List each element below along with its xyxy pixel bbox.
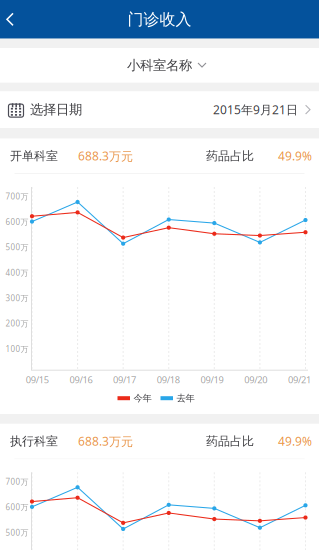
staticText: 药品占比 (206, 434, 254, 448)
staticText: 500万 (5, 527, 28, 538)
staticText: 500万 (5, 242, 28, 252)
staticText: 09/15 (26, 373, 49, 386)
staticText: 100万 (5, 344, 28, 354)
staticText: 开单科室 (10, 148, 58, 163)
button[interactable]: 小科室名称 (0, 48, 319, 83)
staticText: 688.3万元 (78, 433, 133, 449)
staticText: 小科室名称 (127, 57, 192, 74)
staticText: 09/16 (69, 373, 92, 386)
staticText: 去年 (176, 392, 194, 404)
staticText: 700万 (5, 476, 28, 487)
staticText: 选择日期 (30, 101, 82, 118)
staticText: 执行科室 (10, 434, 58, 448)
staticText: 今年 (133, 392, 151, 404)
staticText: 600万 (5, 502, 28, 512)
staticText: 49.9% (278, 433, 312, 449)
staticText: 09/21 (288, 373, 311, 386)
staticText: 门诊收入 (127, 9, 191, 29)
staticText: 09/18 (157, 373, 180, 386)
staticText: 700万 (5, 191, 28, 202)
staticText: 09/19 (200, 373, 223, 386)
staticText: 09/20 (244, 373, 267, 386)
staticText: 300万 (5, 293, 28, 303)
staticText: 药品占比 (206, 148, 254, 163)
button[interactable]: Back (0, 0, 37, 38)
button[interactable]: 选择日期 (0, 91, 319, 128)
staticText: 400万 (5, 267, 28, 278)
staticText: 09/17 (113, 373, 136, 386)
staticText: 2015年9月21日 (213, 102, 298, 117)
staticText: 600万 (5, 216, 28, 227)
staticText: 200万 (5, 318, 28, 329)
staticText: 49.9% (278, 148, 312, 164)
staticText: 688.3万元 (78, 148, 133, 164)
